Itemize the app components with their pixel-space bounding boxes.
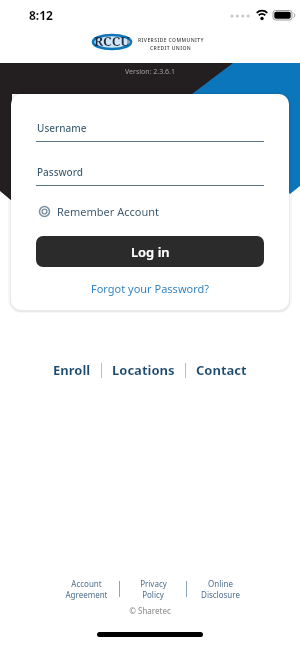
button[interactable]: Forgot your Password? [91, 281, 210, 296]
staticText: Agreement [65, 589, 108, 600]
staticText: Online [208, 578, 233, 589]
staticText: Log in [131, 243, 170, 261]
button[interactable]: Enroll [53, 361, 91, 379]
staticText: Disclosure [201, 589, 240, 600]
button[interactable]: Log in [36, 236, 264, 267]
staticText: RIVERSIDE COMMUNITY [138, 37, 204, 44]
staticText: © Sharetec [0, 605, 300, 616]
button[interactable]: Contact [196, 361, 247, 379]
staticText: Password [37, 165, 83, 179]
staticText: Policy [142, 589, 164, 600]
button[interactable]: Account [53, 578, 119, 600]
button[interactable]: Online [187, 578, 253, 600]
staticText: Remember Account [57, 204, 160, 219]
button[interactable]: Locations [112, 361, 175, 379]
button[interactable]: Remember Account [38, 204, 160, 219]
staticText: Account [71, 578, 102, 589]
staticText: 8:12 [29, 7, 53, 23]
staticText: CREDIT UNION [150, 45, 192, 52]
staticText: Privacy [140, 578, 167, 589]
staticText: Username [37, 121, 87, 135]
staticText: RCCU [92, 32, 132, 50]
button[interactable]: Privacy [120, 578, 186, 600]
staticText: Version: 2.3.6.1 [0, 67, 300, 77]
